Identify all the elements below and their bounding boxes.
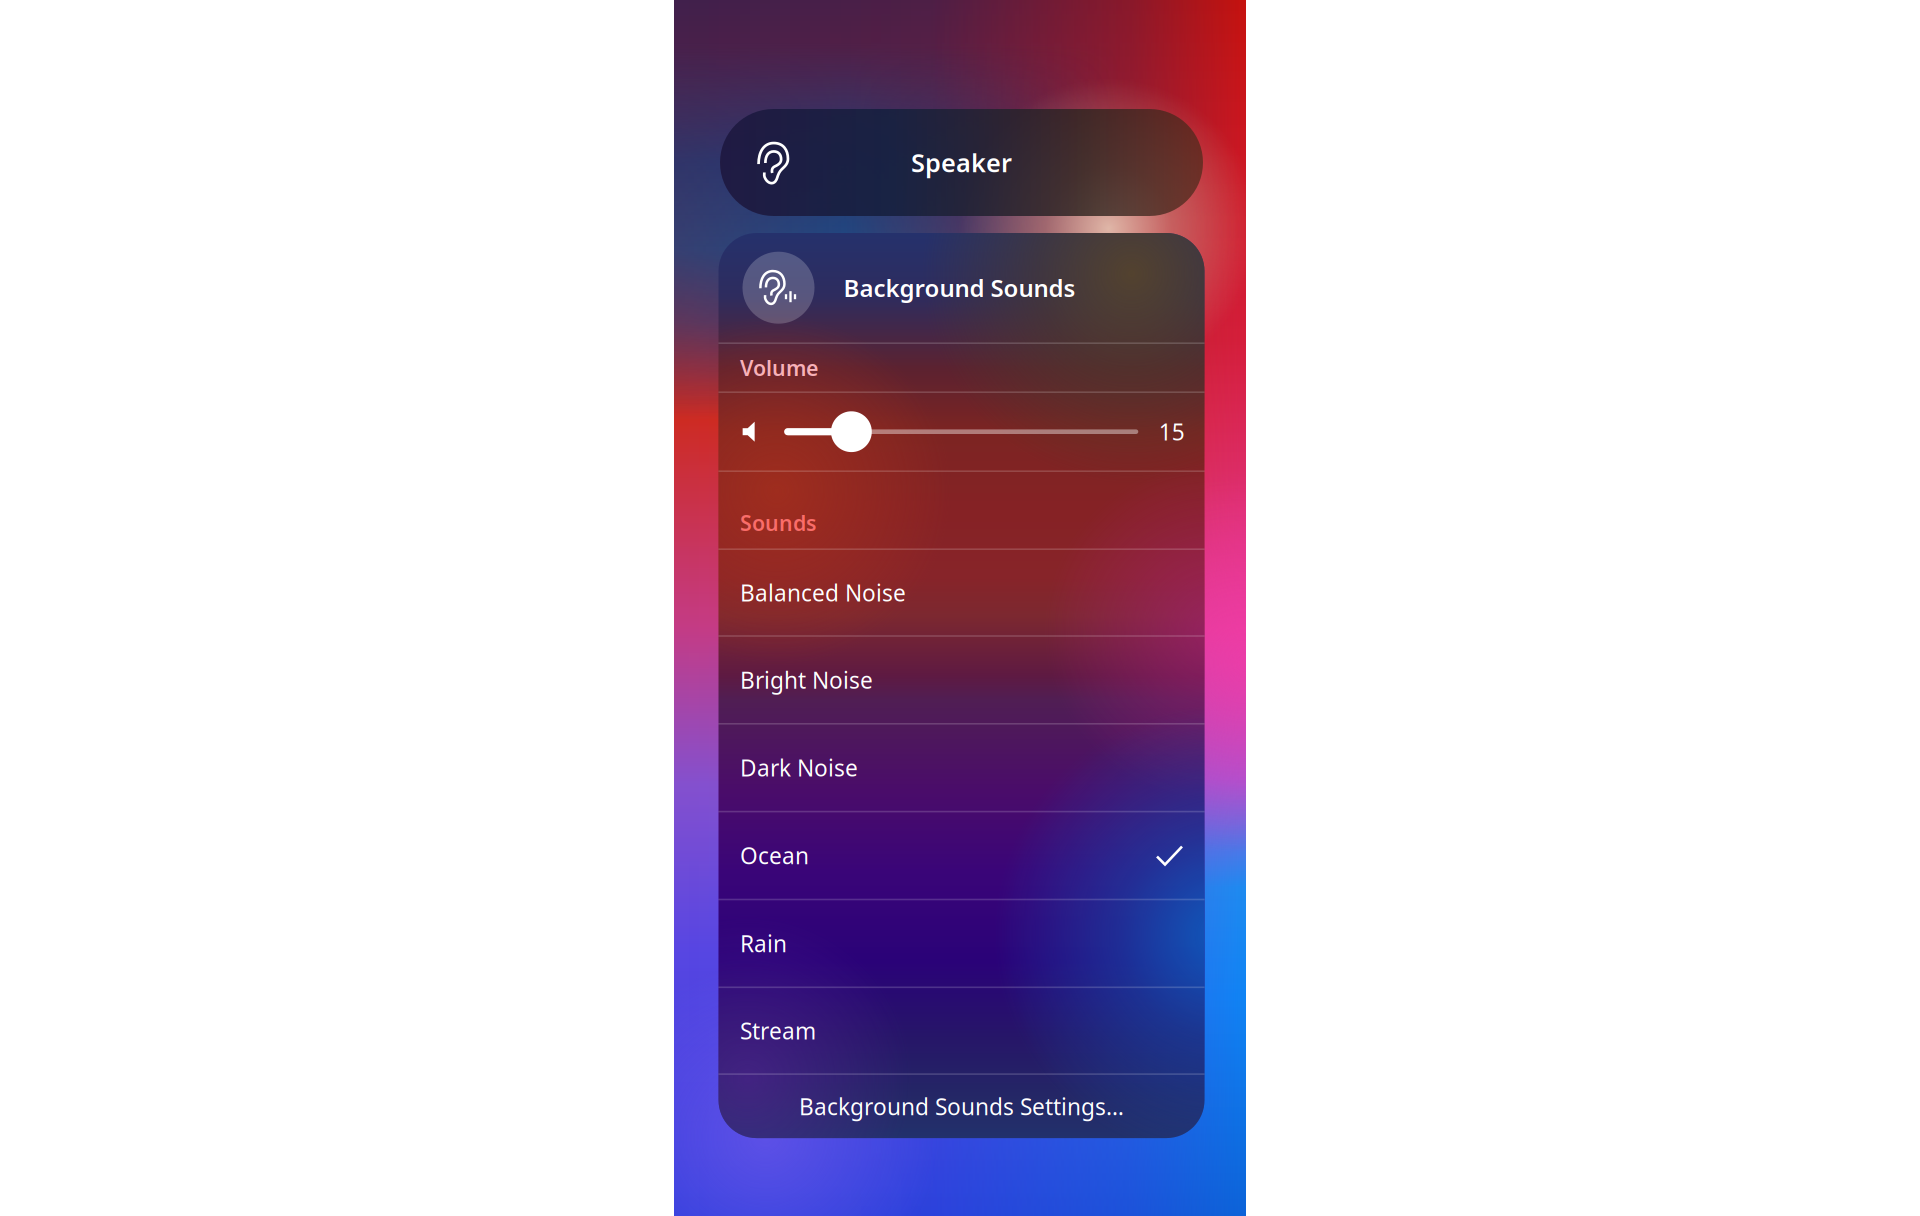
- button[interactable]: Background Sounds: [718, 233, 1204, 342]
- button[interactable]: Balanced Noise: [718, 550, 1204, 635]
- staticText: 15: [1159, 417, 1185, 447]
- button[interactable]: Speaker: [720, 109, 1203, 216]
- staticText: Rain: [740, 928, 787, 958]
- button[interactable]: Rain: [718, 900, 1204, 986]
- button[interactable]: Stream: [718, 988, 1204, 1073]
- staticText: Stream: [740, 1016, 816, 1046]
- button[interactable]: Dark Noise: [718, 725, 1204, 811]
- staticText: Background Sounds Settings…: [799, 1091, 1124, 1121]
- staticText: Dark Noise: [740, 753, 858, 783]
- staticText: Volume: [740, 353, 818, 382]
- staticText: Background Sounds: [843, 272, 1075, 304]
- staticText: Speaker: [911, 146, 1012, 179]
- staticText: Ocean: [740, 840, 809, 871]
- staticText: Balanced Noise: [740, 577, 906, 608]
- staticText: Sounds: [740, 508, 817, 537]
- staticText: Bright Noise: [740, 665, 873, 695]
- button[interactable]: Background Sounds Settings…: [718, 1075, 1204, 1138]
- button[interactable]: Bright Noise: [718, 637, 1204, 723]
- button[interactable]: Ocean: [718, 812, 1204, 899]
